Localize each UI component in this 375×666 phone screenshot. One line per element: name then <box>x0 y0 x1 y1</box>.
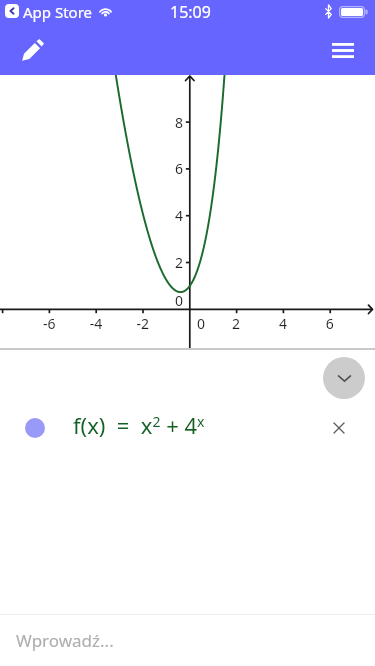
button[interactable]: f(x) = x2 + 4x <box>0 405 375 445</box>
staticText: App Store <box>23 2 93 22</box>
button[interactable]: Wprowadź... <box>0 615 375 666</box>
button[interactable]: Back to App Store <box>5 4 19 18</box>
staticText: 15:09 <box>170 1 211 23</box>
button[interactable]: Delete function <box>321 407 357 443</box>
button[interactable]: Edit <box>8 26 56 74</box>
staticText: f(x) = x2 + 4x <box>73 410 205 440</box>
button[interactable]: Menu <box>319 26 367 74</box>
button[interactable]: Collapse input panel <box>323 357 365 399</box>
staticText: Wprowadź... <box>16 629 114 652</box>
